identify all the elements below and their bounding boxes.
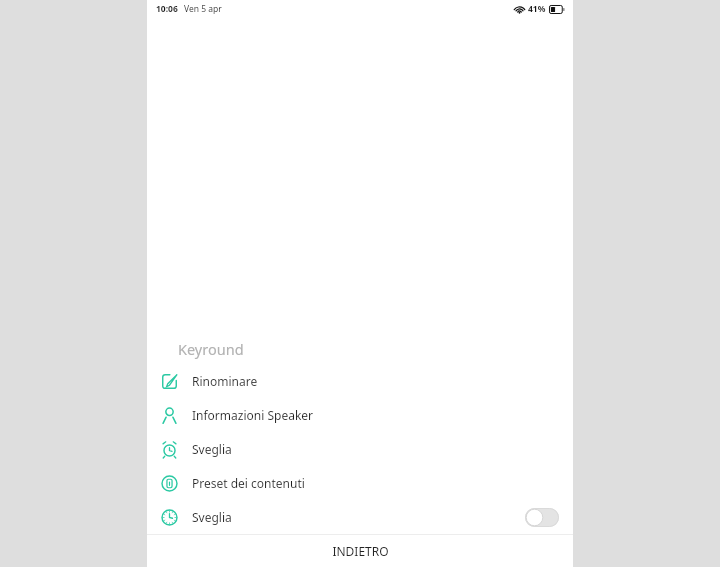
staticText: Sveglia <box>192 441 232 457</box>
staticText: Rinominare <box>192 373 258 389</box>
staticText: 10:06 <box>156 3 178 15</box>
staticText: Preset dei contenuti <box>192 475 305 491</box>
staticText: Informazioni Speaker <box>192 407 314 423</box>
staticText: 41% <box>528 3 546 15</box>
staticText: Keyround <box>178 339 244 359</box>
button[interactable]: Preset dei contenuti <box>147 466 573 500</box>
staticText: Ven 5 apr <box>184 3 222 15</box>
button[interactable]: Sveglia toggle, off <box>525 508 559 527</box>
button[interactable]: Informazioni Speaker <box>147 398 573 432</box>
button[interactable]: Sveglia <box>147 500 573 534</box>
staticText: INDIETRO <box>332 543 389 559</box>
staticText: Sveglia <box>192 509 232 525</box>
button[interactable]: Sveglia <box>147 432 573 466</box>
button[interactable]: INDIETRO <box>147 535 573 567</box>
button[interactable]: Rinominare <box>147 364 573 398</box>
